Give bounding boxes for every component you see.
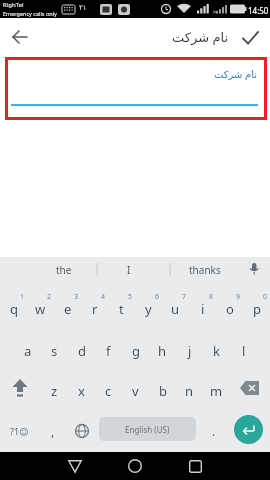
staticText: thanks: [189, 263, 221, 277]
button[interactable]: k: [203, 334, 230, 368]
staticText: 7: [182, 292, 187, 302]
staticText: ,: [51, 423, 55, 439]
button[interactable]: ,: [42, 415, 64, 447]
staticText: 4: [101, 292, 106, 302]
button[interactable]: [175, 452, 215, 480]
staticText: e: [64, 300, 72, 318]
staticText: 5: [128, 292, 133, 302]
button[interactable]: n: [176, 374, 203, 408]
staticText: q: [10, 300, 18, 318]
button[interactable]: w: [27, 292, 54, 326]
staticText: f: [106, 342, 111, 360]
staticText: h: [158, 342, 167, 360]
staticText: d: [78, 342, 86, 360]
staticText: 2: [47, 292, 52, 302]
button[interactable]: y: [135, 292, 162, 326]
staticText: .: [212, 423, 216, 439]
button[interactable]: f: [95, 334, 122, 368]
button[interactable]: o: [216, 292, 243, 326]
button[interactable]: b: [149, 374, 176, 408]
button[interactable]: t: [108, 292, 135, 326]
button[interactable]: h: [149, 334, 176, 368]
button[interactable]: r: [81, 292, 108, 326]
staticText: نام شرکت: [214, 67, 258, 81]
staticText: ۲۱: [79, 4, 87, 12]
staticText: u: [171, 300, 180, 318]
staticText: o: [226, 300, 234, 318]
staticText: 1: [20, 292, 25, 302]
staticText: c: [105, 382, 112, 400]
button[interactable]: l: [230, 334, 257, 368]
button[interactable]: d: [68, 334, 95, 368]
staticText: RighTel: [3, 1, 24, 9]
button[interactable]: thanks: [175, 257, 235, 282]
button[interactable]: p: [243, 292, 270, 326]
staticText: ?1☺: [10, 425, 29, 437]
button[interactable]: u: [162, 292, 189, 326]
button[interactable]: [240, 27, 260, 47]
staticText: x: [78, 382, 85, 400]
staticText: j: [188, 342, 192, 360]
button[interactable]: e: [54, 292, 81, 326]
button[interactable]: نام شرکت: [5, 57, 267, 120]
button[interactable]: z: [41, 374, 68, 408]
button[interactable]: I: [104, 257, 154, 282]
button[interactable]: a: [14, 334, 41, 368]
button[interactable]: i: [189, 292, 216, 326]
button[interactable]: the: [34, 257, 94, 282]
button[interactable]: [115, 452, 155, 480]
button[interactable]: [55, 452, 95, 480]
button[interactable]: [5, 22, 35, 52]
button[interactable]: c: [95, 374, 122, 408]
staticText: English (US): [125, 424, 170, 435]
button[interactable]: ?1☺: [2, 415, 36, 447]
staticText: t: [119, 300, 124, 318]
staticText: b: [159, 382, 167, 400]
button[interactable]: j: [176, 334, 203, 368]
button[interactable]: s: [41, 334, 68, 368]
staticText: the: [56, 263, 72, 277]
button[interactable]: g: [122, 334, 149, 368]
staticText: r: [92, 300, 98, 318]
button[interactable]: v: [122, 374, 149, 408]
staticText: Emergency calls only: [3, 10, 57, 17]
button[interactable]: q: [0, 292, 27, 326]
staticText: 8: [209, 292, 214, 302]
staticText: a: [24, 342, 32, 360]
staticText: I: [127, 263, 131, 277]
button[interactable]: .: [203, 415, 225, 447]
staticText: w: [35, 300, 46, 318]
staticText: g: [132, 342, 140, 360]
button[interactable]: x: [68, 374, 95, 408]
staticText: 14:50: [248, 5, 269, 16]
button[interactable]: m: [203, 374, 230, 408]
staticText: y: [145, 300, 152, 318]
staticText: 0: [263, 292, 268, 302]
staticText: p: [253, 300, 261, 318]
staticText: n: [185, 382, 194, 400]
staticText: k: [213, 342, 220, 360]
button[interactable]: [232, 373, 266, 403]
button[interactable]: [68, 415, 96, 447]
button[interactable]: [4, 373, 36, 403]
staticText: s: [51, 342, 58, 360]
staticText: m: [210, 382, 223, 400]
staticText: z: [51, 382, 58, 400]
staticText: نام شرکت: [172, 28, 229, 46]
staticText: i: [201, 300, 205, 318]
staticText: 9: [236, 292, 241, 302]
staticText: l: [242, 342, 246, 360]
staticText: v: [132, 382, 139, 400]
staticText: 6: [155, 292, 160, 302]
button[interactable]: English (US): [99, 417, 196, 441]
staticText: 3: [74, 292, 79, 302]
button[interactable]: [234, 415, 263, 444]
